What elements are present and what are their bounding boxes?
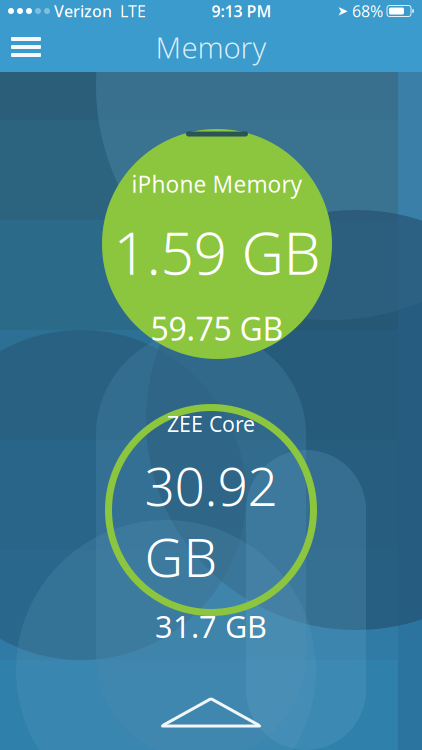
staticText: 30.92 GB [144, 450, 277, 592]
staticText: iPhone Memory [131, 169, 302, 199]
staticText: Memory [155, 27, 266, 66]
staticText: LTE [112, 0, 146, 22]
staticText: Verizon [50, 0, 112, 22]
staticText: 9:13 PM [211, 0, 271, 22]
button[interactable]: Menu [4, 25, 48, 69]
staticText: 31.7 GB [155, 606, 267, 646]
staticText: 68% [348, 0, 383, 22]
staticText: 1.59 GB [113, 213, 320, 291]
staticText: ➤ [337, 3, 348, 18]
staticText: ZEE Core [167, 410, 255, 438]
button[interactable]: Show more [141, 682, 281, 742]
staticText: 59.75 GB [150, 307, 283, 349]
